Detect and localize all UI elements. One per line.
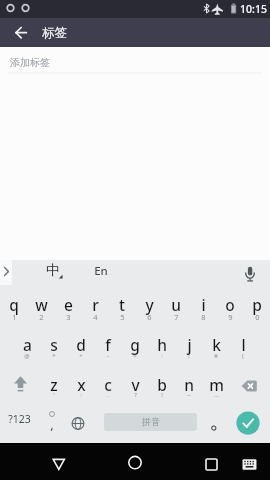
staticText: , — [50, 415, 54, 433]
staticText: + — [79, 352, 83, 360]
staticText: m — [209, 374, 224, 395]
staticText: 9 — [228, 312, 233, 322]
staticText: 5 — [120, 312, 125, 322]
staticText: b — [157, 374, 167, 395]
staticText: 拼音 — [142, 416, 160, 427]
staticText: v — [131, 374, 140, 395]
staticText: : — [80, 391, 82, 399]
button[interactable] — [235, 445, 265, 480]
staticText: z — [50, 374, 58, 395]
staticText: ~ — [187, 391, 191, 399]
button[interactable] — [122, 364, 149, 404]
staticText: 2 — [39, 312, 44, 322]
button[interactable] — [37, 404, 67, 444]
button[interactable] — [68, 364, 95, 404]
button[interactable] — [232, 258, 268, 285]
staticText: q — [9, 294, 19, 315]
staticText: r — [92, 294, 99, 315]
staticText: . — [107, 391, 109, 399]
button[interactable] — [0, 364, 41, 404]
staticText: * — [52, 352, 56, 360]
button[interactable] — [95, 325, 122, 365]
staticText: ( — [242, 352, 244, 360]
staticText: l — [241, 334, 246, 355]
button[interactable] — [41, 325, 68, 365]
button[interactable] — [0, 48, 270, 74]
button[interactable] — [104, 413, 197, 431]
button[interactable] — [116, 445, 154, 480]
staticText: o — [225, 294, 235, 315]
button[interactable] — [200, 404, 228, 444]
button[interactable] — [243, 285, 270, 325]
staticText: g — [130, 334, 140, 355]
staticText: En — [94, 263, 108, 279]
button[interactable] — [41, 364, 68, 404]
staticText: t — [119, 294, 125, 315]
button[interactable] — [230, 364, 270, 404]
button[interactable] — [122, 325, 149, 365]
staticText: 8 — [201, 312, 206, 322]
button[interactable] — [40, 445, 78, 480]
staticText: h — [157, 334, 167, 355]
button[interactable] — [14, 325, 41, 365]
button[interactable] — [68, 325, 95, 365]
staticText: 标签 — [42, 25, 67, 41]
staticText: ?123 — [8, 412, 31, 426]
button[interactable] — [216, 285, 243, 325]
staticText: 6 — [147, 312, 152, 322]
staticText: ; — [188, 352, 190, 360]
staticText: e — [64, 294, 73, 315]
button[interactable] — [95, 364, 122, 404]
button[interactable] — [232, 404, 270, 444]
staticText: x — [77, 374, 86, 395]
button[interactable] — [54, 285, 81, 325]
staticText: 4 — [93, 312, 98, 322]
staticText: ' — [53, 391, 55, 399]
staticText: ! — [161, 391, 163, 399]
staticText: : — [161, 352, 163, 360]
button[interactable] — [149, 364, 176, 404]
button[interactable] — [80, 258, 122, 285]
staticText: 1 — [12, 312, 17, 322]
staticText: 10:15 — [240, 2, 267, 16]
button[interactable] — [27, 285, 54, 325]
button[interactable] — [30, 258, 76, 285]
staticText: d — [76, 334, 86, 355]
button[interactable] — [67, 404, 92, 444]
staticText: - — [107, 352, 109, 360]
button[interactable] — [81, 285, 108, 325]
staticText: 7 — [174, 312, 179, 322]
button[interactable] — [189, 285, 216, 325]
staticText: = — [133, 352, 137, 360]
button[interactable] — [135, 285, 162, 325]
staticText: c — [104, 374, 112, 395]
staticText: ? — [134, 391, 137, 399]
staticText: u — [171, 294, 181, 315]
button[interactable] — [203, 364, 230, 404]
button[interactable] — [149, 325, 176, 365]
button[interactable] — [162, 285, 189, 325]
staticText: n — [184, 374, 194, 395]
staticText: p — [252, 294, 262, 315]
button[interactable] — [6, 22, 30, 44]
staticText: s — [50, 334, 58, 355]
staticText: i — [201, 294, 206, 315]
staticText: a — [23, 334, 32, 355]
staticText: 3 — [66, 312, 71, 322]
staticText: j — [187, 334, 192, 355]
button[interactable] — [176, 364, 203, 404]
staticText: 中 — [46, 262, 60, 280]
staticText: 0 — [255, 312, 260, 322]
button[interactable] — [203, 325, 230, 365]
staticText: … — [214, 391, 219, 399]
button[interactable] — [0, 404, 37, 444]
button[interactable] — [193, 445, 231, 480]
button[interactable] — [108, 285, 135, 325]
staticText: y — [145, 294, 154, 315]
staticText: 添加标签 — [10, 56, 50, 69]
button[interactable] — [230, 325, 257, 365]
button[interactable] — [0, 285, 27, 325]
staticText: w — [35, 294, 48, 315]
button[interactable] — [176, 325, 203, 365]
staticText: # — [214, 352, 218, 360]
